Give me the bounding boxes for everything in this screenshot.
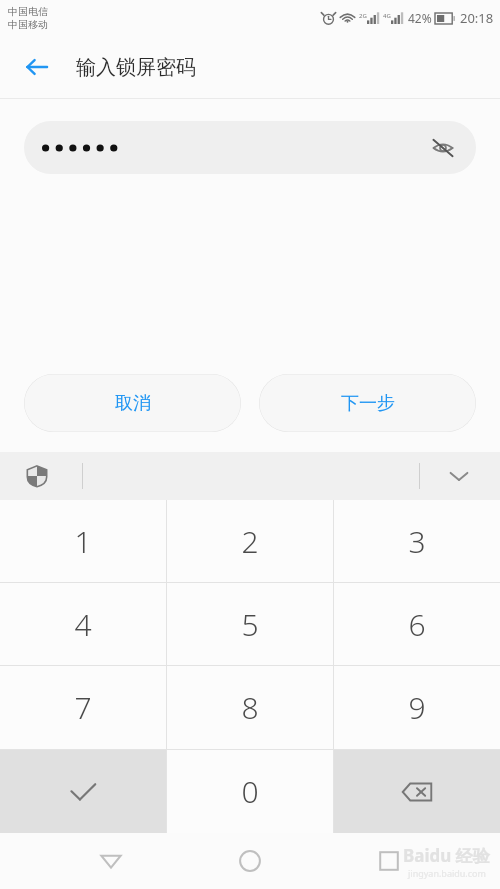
- button[interactable]: Hide keyboard: [440, 457, 478, 495]
- button[interactable]: Secure input: [20, 459, 54, 493]
- staticText: 输入锁屏密码: [76, 55, 196, 80]
- button[interactable]: 2: [167, 500, 333, 582]
- staticText: 6: [408, 604, 426, 645]
- staticText: 8: [241, 687, 259, 728]
- button[interactable]: 3: [334, 500, 500, 582]
- button[interactable]: 6: [334, 583, 500, 665]
- button[interactable]: Confirm: [0, 750, 166, 833]
- button[interactable]: Recent apps: [361, 833, 417, 889]
- staticText: 2: [241, 521, 259, 562]
- staticText: 4: [74, 604, 92, 645]
- staticText: 取消: [115, 392, 151, 415]
- button[interactable]: 1: [0, 500, 166, 582]
- button[interactable]: Show password: [24, 121, 476, 174]
- staticText: 20:18: [460, 9, 494, 27]
- button[interactable]: 5: [167, 583, 333, 665]
- button[interactable]: 取消: [24, 374, 241, 432]
- staticText: 42%: [408, 10, 432, 26]
- staticText: 3: [408, 521, 426, 562]
- staticText: 2G: [359, 12, 367, 20]
- button[interactable]: 8: [167, 666, 333, 749]
- staticText: jingyan.baidu.com: [408, 867, 486, 879]
- button[interactable]: Show password: [422, 127, 464, 169]
- button[interactable]: Back: [83, 833, 139, 889]
- button[interactable]: Back: [14, 44, 60, 90]
- button[interactable]: 9: [334, 666, 500, 749]
- staticText: 中国移动: [8, 18, 48, 31]
- staticText: 4G: [383, 12, 391, 20]
- button[interactable]: Backspace: [334, 750, 500, 833]
- staticText: 9: [408, 687, 426, 728]
- staticText: 0: [241, 771, 259, 812]
- button[interactable]: Home: [222, 833, 278, 889]
- staticText: 1: [74, 521, 92, 562]
- staticText: 下一步: [341, 392, 395, 415]
- button[interactable]: 0: [167, 750, 333, 833]
- button[interactable]: 4: [0, 583, 166, 665]
- staticText: 中国电信: [8, 5, 48, 18]
- button[interactable]: 7: [0, 666, 166, 749]
- staticText: 7: [74, 687, 92, 728]
- staticText: Baidu 经验: [403, 844, 490, 867]
- button[interactable]: 下一步: [259, 374, 476, 432]
- staticText: 5: [241, 604, 259, 645]
